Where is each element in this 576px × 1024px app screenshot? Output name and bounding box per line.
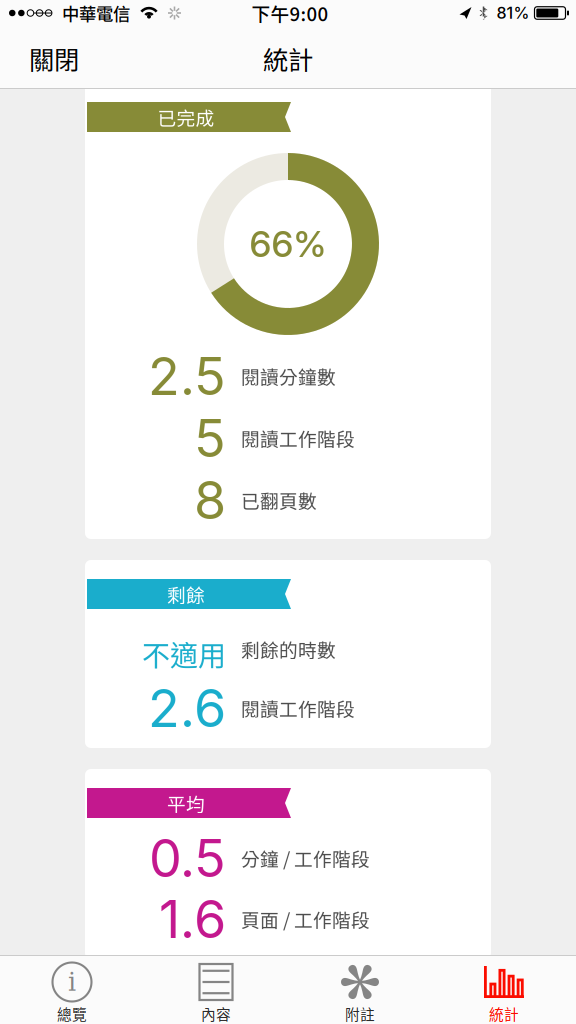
staticText: 平均 (167, 789, 205, 816)
staticText: 統計 (489, 1003, 519, 1024)
staticText: 分鐘 / 工作階段 (241, 844, 370, 871)
staticText: 閱讀分鐘數 (241, 362, 336, 389)
staticText: 閱讀工作階段 (241, 424, 355, 451)
staticText: 5 (194, 406, 226, 469)
staticText: 不適用 (142, 634, 226, 674)
staticText: 已翻頁數 (241, 486, 317, 513)
staticText: 剩餘 (167, 580, 205, 607)
staticText: 2.5 (148, 344, 226, 407)
staticText: 8 (194, 468, 226, 531)
button[interactable]: 統計 (432, 955, 576, 1024)
staticText: 總覽 (57, 1003, 87, 1024)
button[interactable]: 附註 (288, 955, 432, 1024)
staticText: 0.5 (149, 826, 226, 889)
staticText: 關閉 (29, 40, 79, 77)
staticText: 內容 (201, 1003, 231, 1024)
staticText: i (68, 967, 76, 997)
staticText: 頁面 / 工作階段 (241, 905, 370, 932)
button[interactable]: 關閉 (0, 40, 93, 89)
staticText: 統計 (263, 40, 313, 77)
staticText: 閱讀工作階段 (241, 694, 355, 721)
staticText: 附註 (345, 1003, 375, 1024)
staticText: 66% (249, 222, 326, 266)
button[interactable]: 內容 (144, 955, 288, 1024)
staticText: 2.6 (148, 676, 226, 739)
staticText: 剩餘的時數 (241, 635, 336, 662)
staticText: 81% (496, 3, 529, 23)
button[interactable]: i (0, 955, 144, 1024)
staticText: 中華電信 (62, 0, 130, 26)
staticText: 1.6 (159, 887, 226, 950)
staticText: 已完成 (157, 103, 214, 130)
staticText: 下午9:00 (251, 0, 328, 26)
